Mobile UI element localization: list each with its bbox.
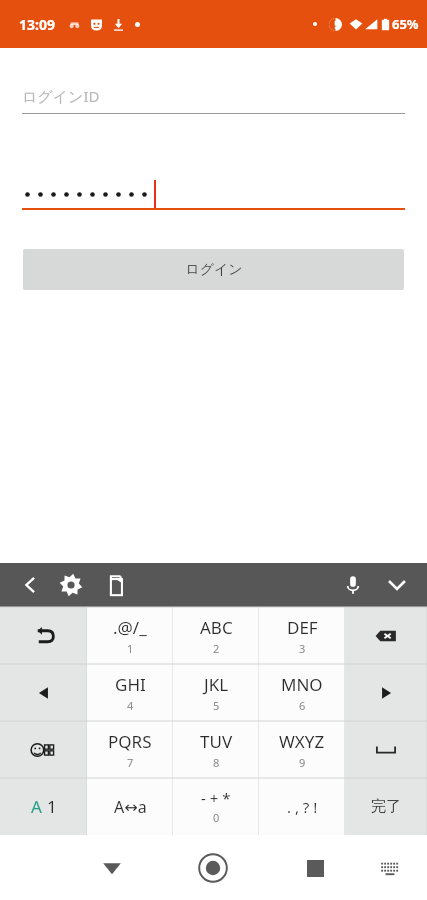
- button[interactable]: JKL: [173, 664, 259, 721]
- staticText: ログイン: [185, 261, 243, 279]
- staticText: A↔a: [114, 796, 147, 818]
- staticText: MNO: [281, 673, 323, 696]
- button[interactable]: Delete: [345, 607, 427, 664]
- button[interactable]: Voice input: [331, 563, 375, 607]
- button[interactable]: Undo: [0, 607, 87, 664]
- button[interactable]: . , ? !: [259, 778, 345, 835]
- staticText: 7: [127, 755, 134, 770]
- button[interactable]: Recents: [291, 844, 339, 892]
- button[interactable]: A: [0, 778, 87, 835]
- button[interactable]: .@/_: [87, 607, 173, 664]
- staticText: 2: [213, 641, 220, 656]
- staticText: 1: [47, 795, 57, 818]
- staticText: 完了: [371, 797, 401, 816]
- staticText: 3: [299, 641, 306, 656]
- staticText: . , ? !: [287, 797, 318, 817]
- button[interactable]: MNO: [259, 664, 345, 721]
- button[interactable]: 完了: [345, 778, 427, 835]
- button[interactable]: Move left: [0, 664, 87, 721]
- button[interactable]: Back: [10, 565, 50, 605]
- staticText: JKL: [204, 673, 229, 696]
- button[interactable]: ログイン: [23, 249, 404, 290]
- staticText: .@/_: [113, 616, 147, 639]
- staticText: - + *: [201, 788, 231, 808]
- button[interactable]: Emoji and symbols: [0, 721, 87, 778]
- button[interactable]: Space: [345, 721, 427, 778]
- button[interactable]: Move right: [345, 664, 427, 721]
- staticText: TUV: [200, 730, 233, 753]
- staticText: 13:09: [19, 15, 55, 34]
- button[interactable]: Settings: [50, 564, 92, 606]
- button[interactable]: A↔a: [87, 778, 173, 835]
- staticText: GHI: [115, 673, 146, 696]
- staticText: 5: [213, 698, 220, 713]
- button[interactable]: ログインID: [22, 78, 405, 114]
- button[interactable]: ABC: [173, 607, 259, 664]
- button[interactable]: Back: [88, 844, 136, 892]
- staticText: WXYZ: [279, 730, 325, 753]
- button[interactable]: WXYZ: [259, 721, 345, 778]
- staticText: 4: [127, 698, 134, 713]
- button[interactable]: - + *: [173, 778, 259, 835]
- staticText: DEF: [287, 616, 318, 639]
- staticText: 8: [213, 755, 220, 770]
- staticText: ABC: [200, 616, 233, 639]
- button[interactable]: Hide keyboard: [375, 563, 419, 607]
- staticText: 9: [299, 755, 306, 770]
- button[interactable]: PQRS: [87, 721, 173, 778]
- button[interactable]: DEF: [259, 607, 345, 664]
- staticText: 6: [299, 698, 306, 713]
- staticText: 65%: [392, 15, 419, 33]
- button[interactable]: Home: [187, 842, 239, 894]
- button[interactable]: TUV: [173, 721, 259, 778]
- staticText: ログインID: [22, 86, 100, 106]
- button[interactable]: Switch keyboard: [368, 846, 412, 890]
- staticText: PQRS: [108, 730, 152, 753]
- button[interactable]: Clipboard: [92, 563, 138, 607]
- staticText: A: [31, 795, 42, 818]
- button[interactable]: GHI: [87, 664, 173, 721]
- staticText: 1: [127, 641, 134, 656]
- button[interactable]: [22, 173, 405, 210]
- staticText: 0: [213, 810, 220, 825]
